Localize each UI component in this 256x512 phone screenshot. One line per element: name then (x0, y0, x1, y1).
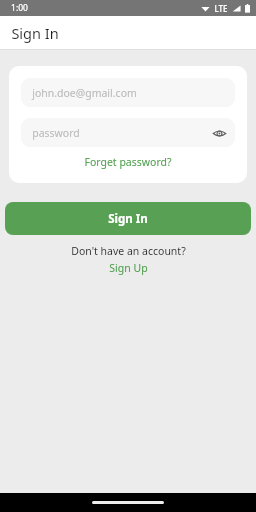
button[interactable]: Sign Up (103, 260, 154, 276)
button[interactable]: Sign In (5, 202, 251, 235)
button[interactable]: password (21, 118, 235, 147)
button[interactable]: Show password (209, 123, 229, 143)
staticText: password (32, 126, 80, 140)
staticText: Don't have an account? (71, 244, 186, 258)
button[interactable]: Forget password? (80, 153, 176, 171)
staticText: Forget password? (84, 155, 172, 169)
staticText: Sign In (108, 211, 148, 227)
staticText: Sign Up (109, 261, 148, 275)
staticText: john.doe@gmail.com (32, 86, 137, 100)
staticText: 1:00 (11, 2, 28, 14)
staticText: LTE (214, 3, 228, 14)
button[interactable]: john.doe@gmail.com (21, 78, 235, 107)
staticText: Sign In (11, 23, 59, 43)
